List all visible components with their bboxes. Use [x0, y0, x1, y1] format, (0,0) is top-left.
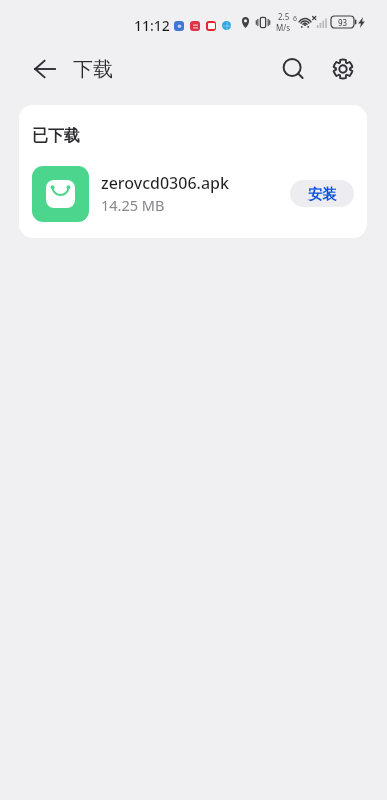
button[interactable]: zerovcd0306.apk [19, 156, 367, 231]
button[interactable]: Search [271, 47, 315, 91]
staticText: 安装 [308, 185, 337, 203]
staticText: zerovcd0306.apk [101, 172, 229, 194]
staticText: 11:12 [134, 16, 170, 35]
staticText: 6 [293, 14, 298, 24]
button[interactable]: Back [20, 45, 68, 93]
staticText: M/s [276, 22, 291, 33]
staticText: 93 [338, 17, 348, 28]
staticText: 2.5 [278, 11, 290, 22]
button[interactable]: 安装 [290, 180, 354, 207]
staticText: 14.25 MB [101, 195, 165, 215]
staticText: 已下载 [32, 126, 80, 146]
button[interactable]: Settings [321, 47, 365, 91]
staticText: 下载 [73, 57, 113, 82]
